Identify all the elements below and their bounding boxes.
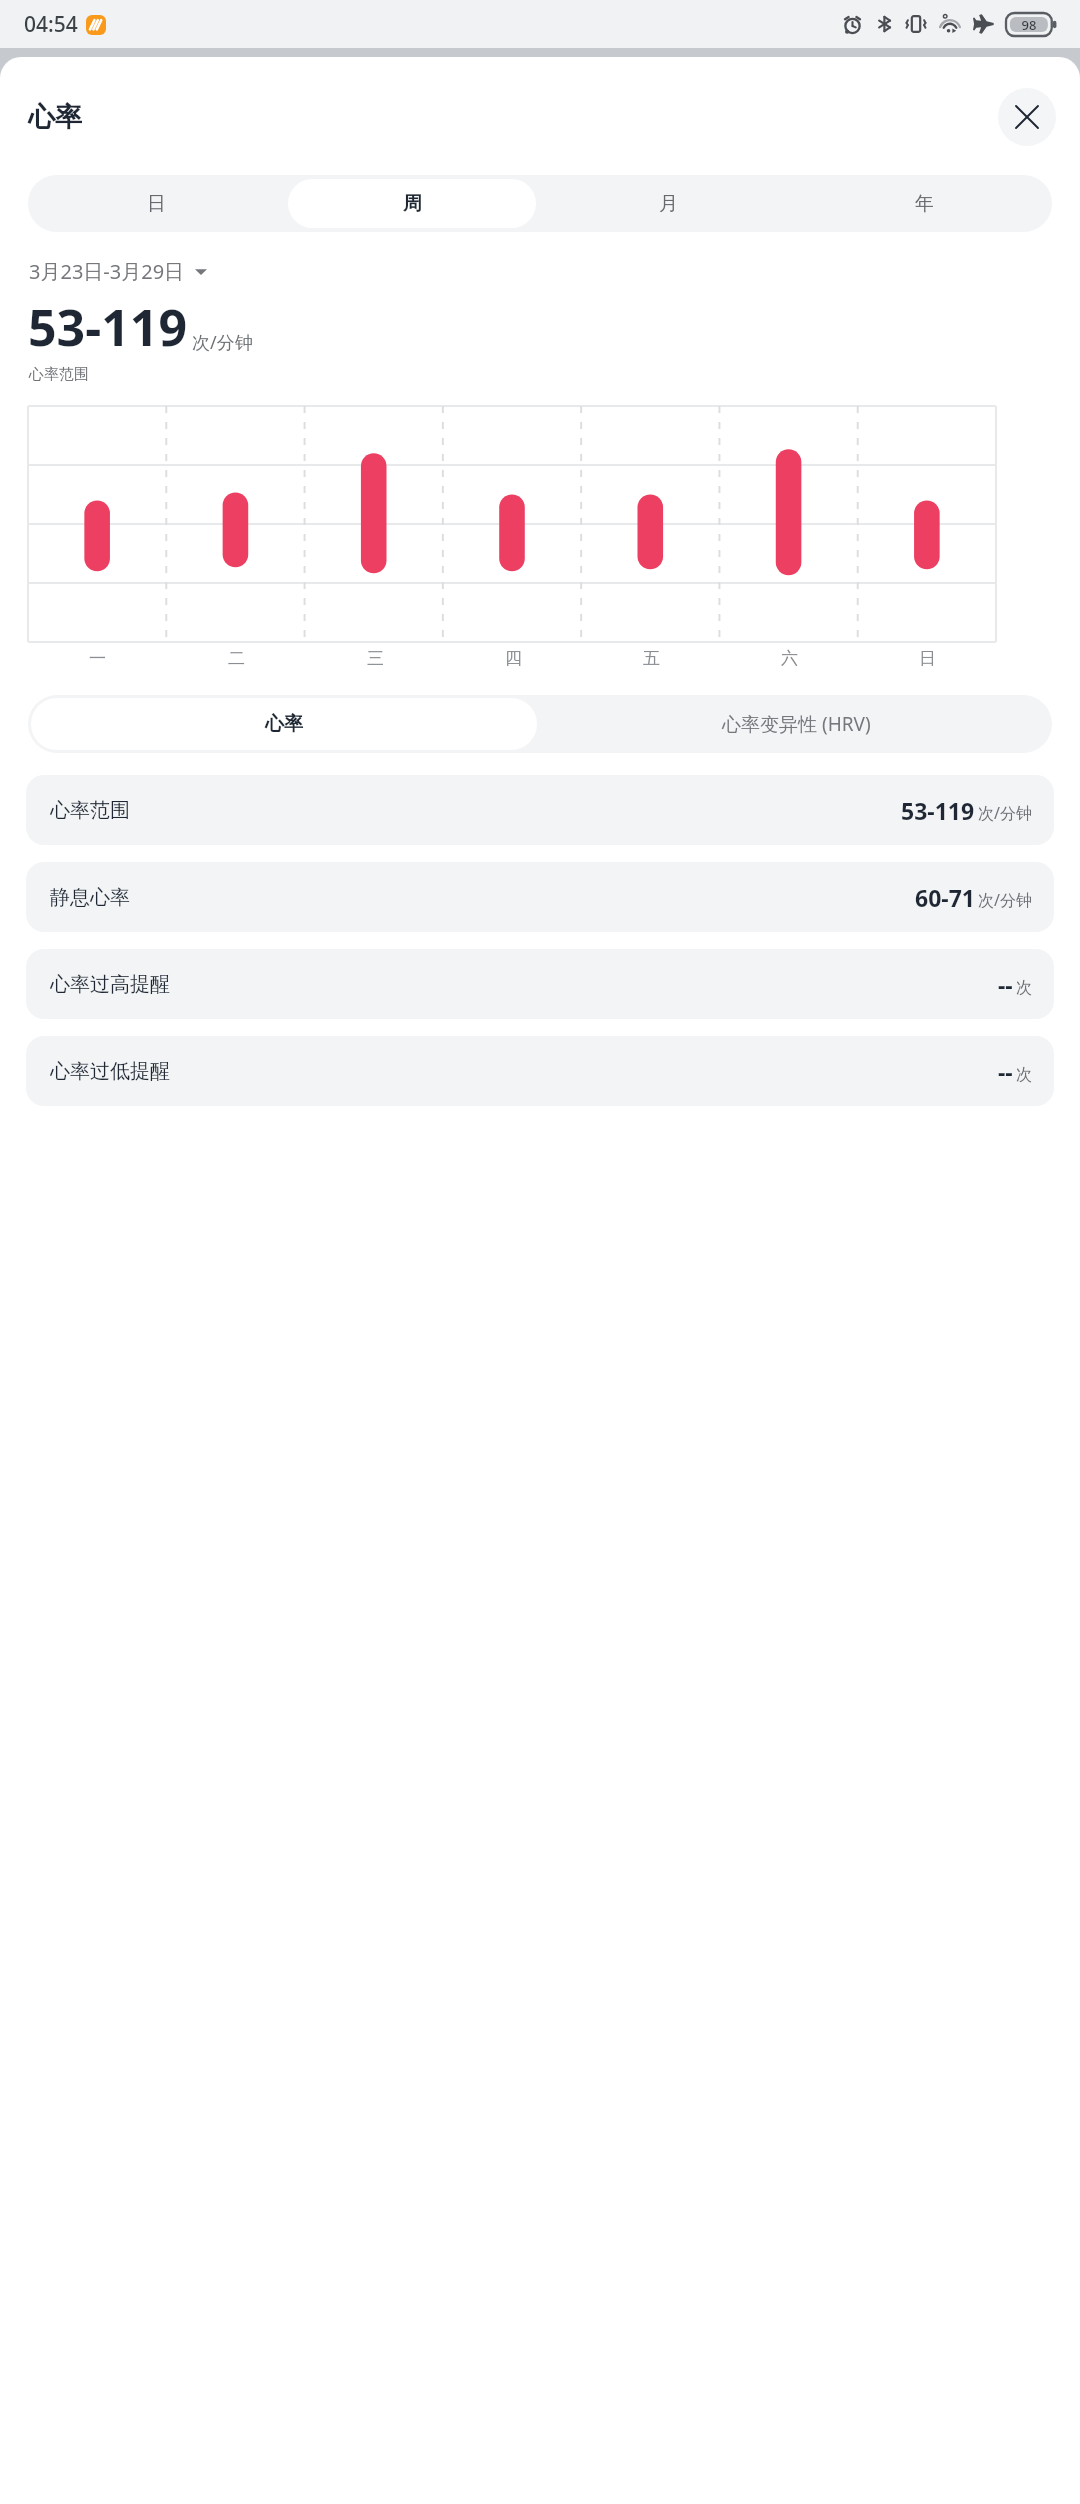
button[interactable]: Close <box>998 88 1056 146</box>
staticText: 日 <box>919 648 936 669</box>
staticText: 心率变异性 (HRV) <box>722 711 871 737</box>
staticText: 心率范围 <box>29 365 89 384</box>
staticText: 04:54 <box>24 10 78 39</box>
staticText: 3月23日-3月29日 <box>29 258 185 285</box>
staticText: 53-119 <box>901 795 975 826</box>
button[interactable]: 日 <box>32 179 280 228</box>
button[interactable]: 心率过低提醒 <box>26 1036 1054 1106</box>
button[interactable]: 心率 <box>31 698 537 750</box>
staticText: 年 <box>915 192 934 216</box>
staticText: 心率范围 <box>50 798 130 823</box>
staticText: 五 <box>643 648 660 669</box>
button[interactable]: 年 <box>800 179 1048 228</box>
staticText: 60-71 <box>915 882 975 913</box>
staticText: 静息心率 <box>50 885 130 910</box>
staticText: 心率 <box>28 100 82 134</box>
staticText: 次 <box>1016 978 1032 998</box>
staticText: 53-119 <box>28 293 187 361</box>
staticText: 次 <box>1016 1065 1032 1085</box>
staticText: 周 <box>403 192 422 216</box>
staticText: 心率过高提醒 <box>50 972 170 997</box>
staticText: -- <box>998 969 1013 1000</box>
staticText: 一 <box>89 648 106 669</box>
staticText: 二 <box>228 648 245 669</box>
staticText: 次/分钟 <box>978 889 1032 911</box>
staticText: 次/分钟 <box>978 802 1032 824</box>
staticText: 日 <box>147 192 166 216</box>
button[interactable]: 心率变异性 (HRV) <box>540 695 1052 753</box>
staticText: 次/分钟 <box>192 330 253 355</box>
button[interactable]: 静息心率 <box>26 862 1054 932</box>
staticText: -- <box>998 1056 1013 1087</box>
button[interactable]: 3月23日-3月29日 <box>29 258 207 285</box>
button[interactable]: 心率过高提醒 <box>26 949 1054 1019</box>
staticText: 四 <box>505 648 522 669</box>
staticText: 心率过低提醒 <box>50 1059 170 1084</box>
button[interactable]: 心率范围 <box>26 775 1054 845</box>
staticText: 心率 <box>265 712 303 736</box>
staticText: 六 <box>781 648 798 669</box>
staticText: 三 <box>367 648 384 669</box>
staticText: 98 <box>1006 16 1052 34</box>
button[interactable]: 月 <box>544 179 792 228</box>
staticText: 月 <box>659 192 678 216</box>
button[interactable]: 周 <box>288 179 536 228</box>
